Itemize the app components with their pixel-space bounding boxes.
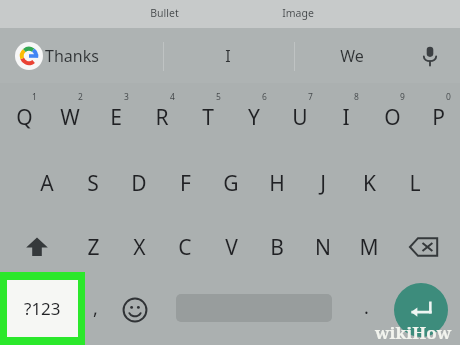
- staticText: G: [223, 169, 239, 198]
- staticText: J: [320, 169, 326, 198]
- button[interactable]: [162, 217, 208, 277]
- button[interactable]: Google: [15, 42, 43, 70]
- button[interactable]: [47, 85, 93, 149]
- button[interactable]: Voice input: [410, 36, 450, 76]
- button[interactable]: [116, 151, 162, 215]
- button[interactable]: Emoji: [112, 282, 158, 338]
- staticText: Bullet: [150, 6, 179, 20]
- staticText: ?123: [24, 297, 61, 320]
- staticText: .: [364, 295, 369, 320]
- button[interactable]: [231, 85, 277, 149]
- staticText: O: [384, 103, 401, 132]
- staticText: 5: [216, 91, 221, 103]
- staticText: I: [342, 103, 350, 132]
- staticText: C: [178, 233, 192, 262]
- button[interactable]: [346, 282, 386, 338]
- staticText: Q: [16, 103, 33, 132]
- staticText: S: [87, 169, 99, 198]
- staticText: 6: [262, 91, 267, 103]
- button[interactable]: [116, 217, 162, 277]
- button[interactable]: Thanks: [27, 38, 117, 73]
- button[interactable]: [208, 217, 254, 277]
- button[interactable]: [415, 85, 460, 149]
- button[interactable]: [254, 217, 300, 277]
- staticText: 1: [32, 91, 37, 103]
- button[interactable]: [75, 282, 115, 338]
- staticText: 3: [124, 91, 129, 103]
- staticText: V: [225, 233, 238, 262]
- staticText: H: [269, 169, 285, 198]
- button[interactable]: [24, 151, 70, 215]
- button[interactable]: [300, 151, 346, 215]
- staticText: 0: [446, 91, 451, 103]
- staticText: K: [363, 169, 376, 198]
- button[interactable]: Enter: [394, 283, 448, 337]
- button[interactable]: [369, 85, 415, 149]
- button[interactable]: [208, 151, 254, 215]
- button[interactable]: Bullet: [134, 1, 194, 24]
- button[interactable]: [346, 151, 392, 215]
- button[interactable]: [93, 85, 139, 149]
- button[interactable]: [346, 217, 392, 277]
- button[interactable]: [300, 217, 346, 277]
- staticText: 4: [170, 91, 175, 103]
- staticText: ,: [93, 296, 98, 321]
- staticText: Y: [248, 103, 260, 132]
- staticText: 9: [400, 91, 405, 103]
- staticText: R: [155, 103, 169, 132]
- button[interactable]: [162, 151, 208, 215]
- staticText: wikiHow: [375, 321, 452, 344]
- staticText: Z: [87, 233, 100, 262]
- button[interactable]: [323, 85, 369, 149]
- staticText: 7: [308, 91, 313, 103]
- staticText: L: [409, 169, 421, 198]
- staticText: 2: [78, 91, 83, 103]
- button[interactable]: [277, 85, 323, 149]
- button[interactable]: Shift: [14, 217, 60, 277]
- staticText: M: [359, 233, 379, 262]
- button[interactable]: [392, 151, 438, 215]
- button[interactable]: [70, 217, 116, 277]
- button[interactable]: Image: [268, 1, 328, 24]
- staticText: E: [110, 103, 122, 132]
- staticText: T: [202, 103, 214, 132]
- staticText: U: [292, 103, 308, 132]
- staticText: B: [270, 233, 284, 262]
- button[interactable]: [139, 85, 185, 149]
- button[interactable]: [185, 85, 231, 149]
- button[interactable]: [70, 151, 116, 215]
- staticText: W: [60, 103, 80, 132]
- staticText: X: [133, 233, 146, 262]
- button[interactable]: Backspace: [401, 217, 447, 277]
- staticText: A: [40, 169, 54, 198]
- button[interactable]: [254, 151, 300, 215]
- staticText: Image: [282, 6, 314, 20]
- button[interactable]: [1, 85, 47, 149]
- staticText: Thanks: [45, 45, 99, 67]
- staticText: We: [340, 45, 364, 67]
- staticText: P: [432, 103, 445, 132]
- button[interactable]: I: [198, 38, 258, 73]
- staticText: 8: [354, 91, 359, 103]
- staticText: N: [315, 233, 331, 262]
- staticText: F: [180, 169, 191, 198]
- button[interactable]: We: [317, 38, 387, 73]
- staticText: D: [131, 169, 147, 198]
- staticText: I: [225, 45, 231, 67]
- button[interactable]: ?123: [7, 280, 78, 337]
